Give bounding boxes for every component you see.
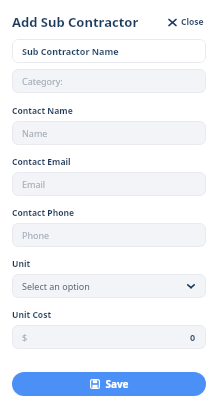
staticText: Unit Cost <box>12 309 52 321</box>
staticText: Unit <box>12 258 31 270</box>
staticText: $ <box>22 331 28 343</box>
staticText: Phone <box>22 229 50 241</box>
staticText: Email <box>22 178 46 190</box>
button[interactable]: $ <box>12 325 206 349</box>
staticText: Close <box>181 16 204 28</box>
staticText: Select an option <box>22 280 90 292</box>
staticText: Save <box>105 377 129 391</box>
button[interactable]: Select an option <box>12 274 206 298</box>
button[interactable]: Name <box>12 121 206 145</box>
staticText: Contact Name <box>12 105 73 117</box>
button[interactable]: Close <box>166 14 206 30</box>
button[interactable]: Email <box>12 172 206 196</box>
staticText: Add Sub Contractor <box>12 13 139 31</box>
staticText: Sub Contractor Name <box>22 45 119 57</box>
staticText: Name <box>22 127 48 139</box>
staticText: Contact Phone <box>12 207 75 219</box>
button[interactable]: Sub Contractor Name <box>12 39 206 63</box>
button[interactable]: Save <box>12 372 206 396</box>
button[interactable]: Category: <box>12 69 206 93</box>
button[interactable]: Phone <box>12 223 206 247</box>
staticText: Contact Email <box>12 156 71 168</box>
staticText: Category: <box>22 75 63 87</box>
staticText: 0 <box>190 331 196 343</box>
other: Open unit options <box>186 281 196 291</box>
